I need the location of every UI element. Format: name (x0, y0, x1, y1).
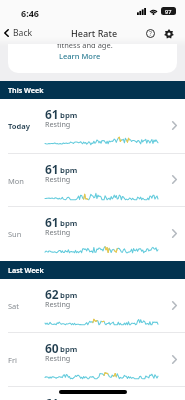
staticText: 61 (45, 106, 59, 122)
staticText: Sat (8, 301, 20, 311)
staticText: bpm (60, 110, 78, 121)
button[interactable]: Learn More (59, 51, 101, 61)
button[interactable]: Help (144, 27, 157, 40)
staticText: fitness and age. (57, 44, 113, 50)
staticText: Sun (8, 229, 22, 239)
staticText: 60 (45, 340, 59, 356)
staticText: Heart Rate (71, 27, 118, 39)
staticText: Resting (45, 174, 71, 184)
staticText: 6:46 (21, 7, 39, 19)
staticText: 62 (45, 286, 59, 302)
button[interactable]: Mon (0, 154, 185, 206)
button[interactable]: Back (0, 24, 39, 42)
staticText: bpm (60, 218, 78, 229)
staticText: Resting (45, 119, 71, 129)
staticText: 61 (45, 214, 59, 230)
staticText: Resting (45, 227, 71, 237)
button[interactable]: Settings (162, 27, 175, 40)
button[interactable]: Today (0, 99, 185, 153)
staticText: Back (13, 27, 33, 39)
staticText: bpm (60, 290, 78, 301)
staticText: bpm (60, 344, 78, 355)
staticText: Resting (45, 299, 71, 309)
staticText: bpm (60, 165, 78, 176)
staticText: Resting (45, 353, 71, 363)
button[interactable]: Sun (0, 207, 185, 261)
staticText: This Week (8, 85, 44, 95)
staticText: 61 (45, 161, 59, 177)
staticText: 97 (165, 8, 172, 15)
staticText: ? (149, 29, 152, 38)
staticText: Last Week (8, 265, 44, 275)
staticText: Fri (8, 355, 17, 365)
button[interactable]: Sat (0, 279, 185, 332)
staticText: Today (8, 121, 31, 131)
staticText: Learn More (59, 51, 101, 61)
staticText: 61 (45, 395, 59, 400)
staticText: Mon (8, 176, 24, 186)
button[interactable]: Fri (0, 333, 185, 386)
